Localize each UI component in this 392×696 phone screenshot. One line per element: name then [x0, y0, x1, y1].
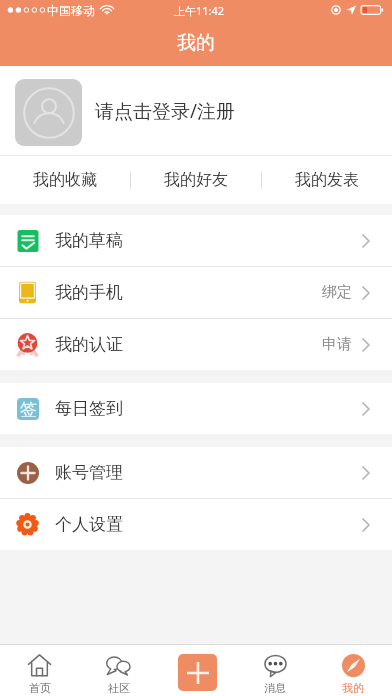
button[interactable]: 我的收藏	[0, 156, 130, 204]
staticText: 我的	[342, 681, 364, 695]
button[interactable]: 首页	[0, 645, 79, 696]
button[interactable]: 我的手机	[0, 267, 392, 318]
staticText: 签	[20, 399, 37, 420]
staticText: 我的认证	[55, 334, 123, 355]
staticText: 绑定	[322, 283, 352, 302]
staticText: 我的好友	[164, 170, 228, 190]
button[interactable]: 我的好友	[131, 156, 261, 204]
staticText: 我的草稿	[55, 230, 123, 251]
button[interactable]: 消息	[236, 645, 314, 696]
button[interactable]: 个人设置	[0, 499, 392, 550]
button[interactable]: 我的草稿	[0, 215, 392, 266]
button[interactable]: 我的发表	[262, 156, 392, 204]
button[interactable]: 签	[0, 383, 392, 434]
button[interactable]: 账号管理	[0, 447, 392, 498]
staticText: 每日签到	[55, 398, 123, 419]
button[interactable]: 发布	[158, 645, 236, 696]
button[interactable]: 社区	[79, 645, 158, 696]
button[interactable]: 我的	[314, 645, 392, 696]
staticText: 首页	[29, 681, 51, 695]
staticText: 个人设置	[55, 514, 123, 535]
staticText: 申请	[322, 335, 352, 354]
staticText: 消息	[264, 681, 286, 695]
staticText: 账号管理	[55, 462, 123, 483]
button[interactable]: 请点击登录/注册	[0, 66, 392, 155]
staticText: 我的收藏	[33, 170, 97, 190]
staticText: 我的发表	[295, 170, 359, 190]
staticText: 上午11:42	[174, 3, 225, 18]
staticText: 中国移动	[47, 3, 95, 18]
staticText: 社区	[108, 681, 130, 695]
staticText: 请点击登录/注册	[95, 98, 236, 124]
button[interactable]: 我的认证	[0, 319, 392, 370]
staticText: 我的手机	[55, 282, 123, 303]
staticText: 我的	[177, 31, 215, 55]
